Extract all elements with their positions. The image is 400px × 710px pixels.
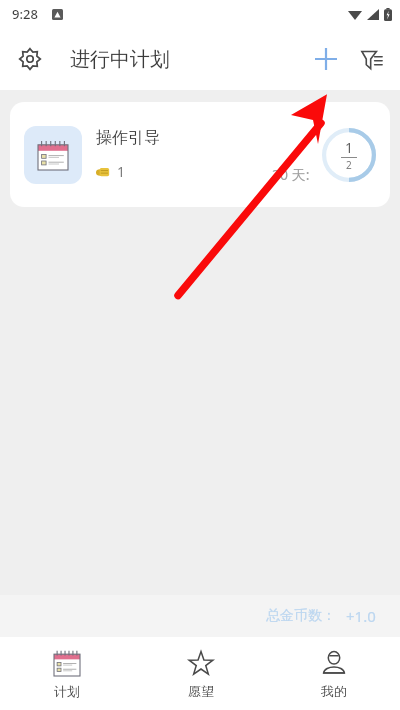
button[interactable]: 愿望 <box>134 637 267 710</box>
button[interactable]: 我的 <box>267 637 400 710</box>
button[interactable]: 计划 <box>0 637 134 710</box>
staticText: 30 天: <box>272 165 310 184</box>
staticText: 愿望 <box>188 683 214 699</box>
staticText: 进行中计划 <box>70 47 170 72</box>
button[interactable]: 操作引导 <box>10 102 390 207</box>
staticText: 计划 <box>54 683 80 699</box>
button[interactable]: Filter <box>350 37 394 81</box>
staticText: 1 <box>117 162 126 181</box>
staticText: 2 <box>346 158 352 172</box>
staticText: +1.0 <box>346 606 376 626</box>
staticText: 操作引导 <box>96 128 160 148</box>
staticText: 1 <box>345 138 354 157</box>
staticText: 我的 <box>321 683 347 699</box>
button[interactable]: Add plan <box>304 37 348 81</box>
staticText: 9:28 <box>12 5 38 23</box>
button[interactable]: Settings <box>8 37 52 81</box>
staticText: 总金币数： <box>266 607 336 625</box>
